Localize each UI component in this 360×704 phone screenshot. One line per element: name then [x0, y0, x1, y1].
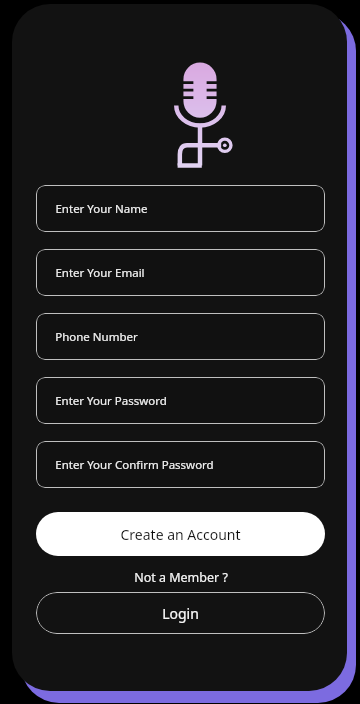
button[interactable]: Enter Your Name — [36, 185, 325, 232]
other: App logo microphone — [164, 61, 236, 167]
staticText: Not a Member ? — [134, 569, 228, 586]
staticText: Enter Your Name — [55, 201, 148, 217]
staticText: Create an Account — [120, 525, 241, 544]
staticText: Login — [162, 604, 199, 623]
button[interactable]: Create an Account — [36, 512, 325, 556]
staticText: Enter Your Email — [55, 265, 145, 281]
button[interactable]: Enter Your Password — [36, 377, 325, 424]
button[interactable]: Enter Your Email — [36, 249, 325, 296]
button[interactable]: Not a Member ? — [36, 566, 325, 588]
button[interactable]: Login — [36, 592, 325, 634]
staticText: Enter Your Password — [55, 393, 167, 409]
staticText: Enter Your Confirm Password — [55, 457, 214, 473]
button[interactable]: Phone Number — [36, 313, 325, 360]
staticText: Phone Number — [55, 329, 138, 345]
button[interactable]: Enter Your Confirm Password — [36, 441, 325, 488]
